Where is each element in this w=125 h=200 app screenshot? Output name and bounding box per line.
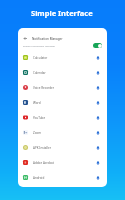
other: Notifications <box>96 101 100 105</box>
button[interactable]: Toggle <box>93 43 102 48</box>
button[interactable]: Calculator <box>18 50 107 65</box>
other: Notifications <box>96 161 100 165</box>
staticText: Adobe Acrobat <box>33 161 54 165</box>
staticText: Simple Interface <box>31 8 93 18</box>
button[interactable]: Back <box>18 36 107 41</box>
button[interactable]: Calendar <box>18 65 107 80</box>
button[interactable]: Enable Notification Manager <box>18 43 107 48</box>
staticText: Word <box>33 101 41 105</box>
staticText: Voice Recorder <box>33 86 55 90</box>
other: Notifications <box>96 116 100 120</box>
other: Notifications <box>96 176 100 180</box>
staticText: APK Installer <box>33 146 51 150</box>
staticText: Calendar <box>33 71 46 75</box>
other: Notifications <box>96 131 100 135</box>
button[interactable]: Word <box>18 95 107 110</box>
button[interactable]: YouTube <box>18 110 107 125</box>
button[interactable]: APK Installer <box>18 140 107 155</box>
other: Notifications <box>96 146 100 150</box>
other: Notifications <box>96 71 100 75</box>
staticText: Calculator <box>33 56 48 60</box>
staticText: Enable Notification Manager <box>23 44 56 47</box>
button[interactable]: Android <box>18 170 107 185</box>
other: Notifications <box>96 86 100 90</box>
staticText: Notification Manager <box>32 37 63 41</box>
staticText: Zoom <box>33 131 42 135</box>
other: Back <box>23 36 28 41</box>
staticText: Android <box>33 176 45 180</box>
staticText: YouTube <box>33 116 46 120</box>
button[interactable]: Voice Recorder <box>18 80 107 95</box>
button[interactable]: Zoom <box>18 125 107 140</box>
other: Notifications <box>96 56 100 60</box>
button[interactable]: Adobe Acrobat <box>18 155 107 170</box>
